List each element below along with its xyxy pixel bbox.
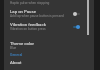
button[interactable]: About — [4, 60, 94, 66]
staticText: Vibration on button press — [10, 27, 46, 31]
staticText: Theme color — [10, 41, 34, 46]
staticText: Vibration feedback — [10, 22, 46, 27]
button[interactable]: Theme color — [4, 41, 94, 51]
button[interactable]: Lap on pause toggle — [73, 11, 80, 17]
staticText: General — [10, 53, 23, 57]
button[interactable]: Vibration feedback — [4, 19, 94, 32]
staticText: Add lap when pause button is pressed — [10, 14, 64, 18]
staticText: About — [10, 60, 22, 65]
button[interactable]: Lap on Pause — [4, 5, 94, 19]
staticText: Haptic pulse when stopping — [10, 1, 50, 5]
button[interactable]: Vibration feedback toggle — [73, 24, 80, 30]
staticText: Lap on Pause — [10, 9, 36, 14]
staticText: Blue — [10, 46, 17, 50]
